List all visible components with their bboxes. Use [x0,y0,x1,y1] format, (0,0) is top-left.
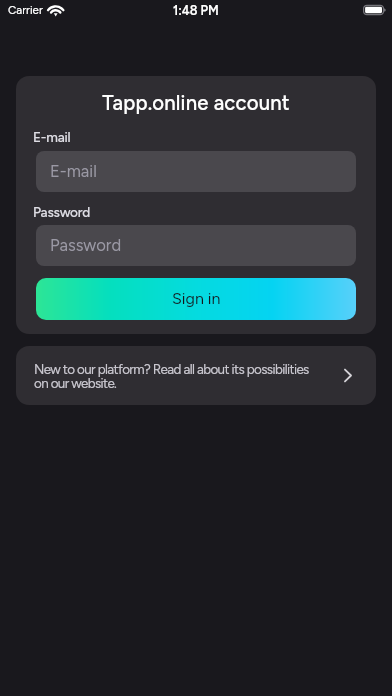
button[interactable]: Sign in [36,278,356,320]
other: Open website [344,369,352,382]
staticText: Password [50,235,122,255]
button[interactable]: E-mail [36,151,356,192]
staticText: E-mail [33,129,71,145]
staticText: Tapp.online account [102,91,290,115]
staticText: Sign in [172,289,221,308]
staticText: 1:48 PM [173,3,219,18]
button[interactable]: New to our platform? Read all about its … [16,346,376,405]
staticText: Carrier [8,3,43,17]
staticText: Password [33,204,91,220]
button[interactable]: Password [36,225,356,266]
staticText: E-mail [50,161,97,181]
staticText: New to our platform? Read all about its … [34,361,322,391]
